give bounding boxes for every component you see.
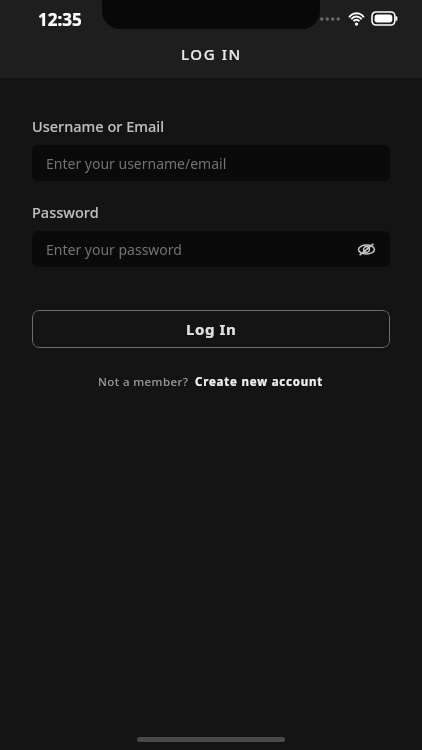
- button[interactable]: Enter your password: [32, 231, 390, 267]
- button[interactable]: Enter your username/email: [32, 145, 390, 181]
- staticText: Log In: [186, 319, 237, 339]
- staticText: Not a member?: [98, 374, 189, 390]
- button[interactable]: Show password: [354, 237, 378, 261]
- button[interactable]: Log In: [32, 310, 390, 348]
- staticText: 12:35: [38, 8, 82, 31]
- staticText: Enter your password: [46, 240, 182, 259]
- staticText: Create new account: [195, 374, 324, 390]
- staticText: LOG IN: [181, 44, 242, 64]
- staticText: Username or Email: [32, 116, 165, 136]
- button[interactable]: Create new account: [195, 374, 324, 390]
- staticText: Password: [32, 202, 99, 222]
- staticText: Enter your username/email: [46, 154, 227, 173]
